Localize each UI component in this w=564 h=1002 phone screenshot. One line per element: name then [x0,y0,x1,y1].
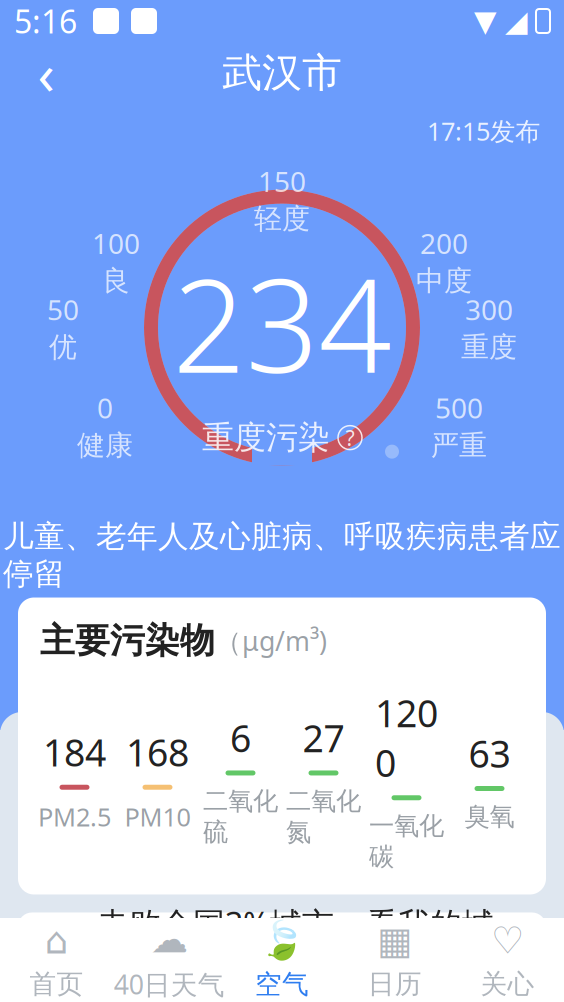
staticText: 184 [43,727,106,777]
staticText: 150 [258,163,306,200]
staticText: 50 [47,291,79,328]
staticText: PM2.5 [38,800,111,833]
button[interactable]: 🍃 [226,918,338,1002]
button[interactable]: Back [18,45,74,101]
staticText: 二氧化氮 [286,785,361,848]
button[interactable]: ☁ [113,918,226,1002]
staticText: 重度污染 [202,418,330,457]
staticText: 17:15发布 [427,114,540,148]
staticText: ? [345,423,354,452]
staticText: 200 [420,225,468,262]
staticText: › [511,916,524,973]
staticText: 轻度 [254,202,310,236]
button[interactable]: Air quality info [338,426,362,450]
staticText: 空气 [255,968,309,1001]
button[interactable]: ♡ [451,918,564,1002]
staticText: 🍃 [259,919,305,962]
staticText: ☁ [151,918,188,960]
staticText: 234 [172,238,391,408]
staticText: 优 [49,330,77,364]
staticText: 室内，健康人群减少户外运动! [76,599,487,640]
staticText: 1200 [375,688,438,787]
staticText: 0 [97,389,113,426]
staticText: ‹ [37,36,54,110]
staticText: 300 [465,291,513,328]
staticText: 5:16 [14,0,77,42]
staticText: 中度 [416,264,472,298]
staticText: 63 [468,728,510,778]
staticText: ▦ [377,919,412,962]
staticText: 严重 [431,428,487,463]
staticText: 🏆 [40,925,83,964]
staticText: ▼ [474,4,497,38]
button[interactable]: ▦ [338,918,451,1002]
staticText: 27 [302,713,344,762]
staticText: 击败全国3%城市，看我的城市排第几? [97,902,494,987]
staticText: 6 [230,713,251,762]
staticText: 重度 [461,330,517,364]
staticText: ♡ [491,919,524,962]
staticText: 关心 [481,968,535,1001]
staticText: 二氧化硫 [203,785,278,848]
staticText: PM10 [124,800,190,833]
staticText: 500 [435,389,483,426]
button[interactable]: 🏆 [18,912,546,976]
staticText: 日历 [368,968,422,1001]
staticText: 100 [92,225,140,262]
staticText: （μg/m³) [215,623,327,659]
staticText: ◢ [505,4,528,38]
staticText: 168 [126,727,189,777]
staticText: 主要污染物 [40,619,215,662]
staticText: 臭氧 [464,801,514,832]
button[interactable]: ⌂ [0,918,113,1002]
staticText: 良 [102,264,130,298]
staticText: 一氧化碳 [369,810,444,872]
staticText: ⌂ [44,919,68,962]
staticText: 健康 [77,428,133,463]
staticText: 40日天气 [114,966,225,1002]
staticText: 武汉市 [222,48,342,97]
staticText: 儿童、老年人及心脏病、呼吸疾病患者应停留 [3,518,561,593]
staticText: 首页 [29,968,83,1001]
